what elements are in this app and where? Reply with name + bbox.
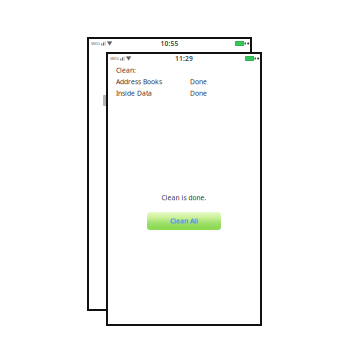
staticText: SMG [110,56,119,61]
button[interactable]: Clean All [147,212,221,230]
staticText: 11:29 [175,54,193,63]
staticText: SMG [91,41,100,46]
staticText: Clean is done. [161,193,206,202]
staticText: Clean All [170,217,198,225]
staticText: Address Books [116,77,162,86]
staticText: Inside Data [116,89,152,98]
staticText: Done [190,77,207,86]
staticText: Done [190,89,207,98]
staticText: 10:55 [160,39,178,48]
staticText: Clean: [116,66,136,75]
